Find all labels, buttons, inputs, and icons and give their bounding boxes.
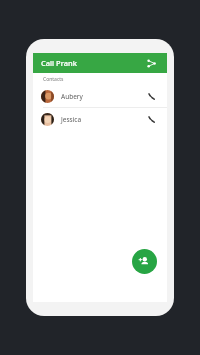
staticText: Contacts	[43, 76, 64, 83]
button[interactable]: Share	[143, 55, 159, 71]
button[interactable]: Call Jessica	[143, 111, 159, 127]
button[interactable]: Add contact	[132, 249, 157, 274]
staticText: Jessica	[61, 115, 82, 124]
button[interactable]: Call Aubery	[143, 88, 159, 104]
button[interactable]: Aubery	[33, 85, 167, 107]
button[interactable]: Jessica	[33, 108, 167, 130]
staticText: Aubery	[61, 92, 83, 101]
staticText: Call Prank	[41, 58, 77, 68]
